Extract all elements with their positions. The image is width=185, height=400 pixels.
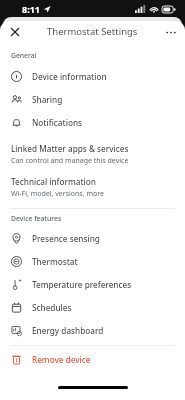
- button[interactable]: Notifications: [0, 111, 185, 134]
- staticText: Remove device: [32, 354, 91, 365]
- staticText: Can control and manage this device: [11, 156, 129, 166]
- staticText: Notifications: [32, 117, 82, 128]
- button[interactable]: Linked Matter apps & services: [0, 137, 185, 170]
- button[interactable]: Technical information: [0, 170, 185, 203]
- staticText: Presence sensing: [32, 233, 100, 244]
- staticText: Sharing: [32, 94, 63, 105]
- staticText: Device information: [32, 71, 107, 82]
- staticText: Energy dashboard: [32, 325, 104, 336]
- staticText: Temperature preferences: [32, 279, 132, 290]
- staticText: Thermostat Settings: [47, 25, 138, 38]
- button[interactable]: Presence sensing: [0, 227, 185, 250]
- staticText: General: [11, 51, 37, 60]
- staticText: 8:11: [22, 3, 40, 15]
- button[interactable]: Device information: [0, 65, 185, 88]
- button[interactable]: Close: [6, 23, 24, 41]
- staticText: Device features: [11, 214, 62, 223]
- button[interactable]: Schedules: [0, 296, 185, 319]
- staticText: Schedules: [32, 302, 72, 313]
- button[interactable]: Remove device: [0, 348, 185, 371]
- button[interactable]: Thermostat: [0, 250, 185, 273]
- button[interactable]: Temperature preferences: [0, 273, 185, 296]
- staticText: Thermostat: [32, 256, 78, 267]
- button[interactable]: Energy dashboard: [0, 319, 185, 342]
- button[interactable]: More options: [162, 23, 180, 41]
- staticText: Linked Matter apps & services: [11, 143, 129, 154]
- staticText: Technical information: [11, 176, 96, 187]
- staticText: Wi-Fi, model, versions, more: [11, 189, 104, 199]
- button[interactable]: Sharing: [0, 88, 185, 111]
